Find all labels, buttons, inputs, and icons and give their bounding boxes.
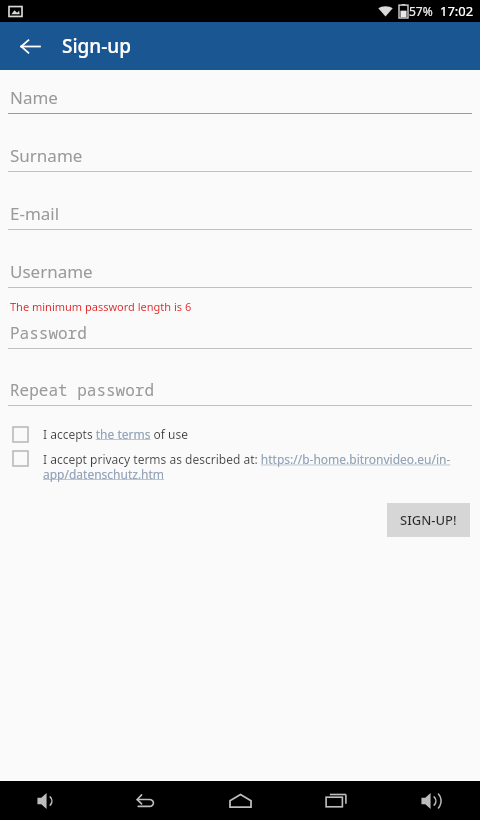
button[interactable]: SIGN-UP!: [387, 503, 470, 537]
staticText: Surname: [10, 144, 83, 167]
button[interactable]: Surname: [0, 144, 480, 172]
button[interactable]: Recents: [288, 781, 384, 820]
button[interactable]: Repeat password: [0, 379, 480, 406]
staticText: Username: [10, 260, 93, 283]
button[interactable]: Username: [0, 260, 480, 288]
button[interactable]: I accepts the terms of use: [0, 423, 480, 445]
button[interactable]: Back: [12, 28, 48, 64]
staticText: I accept privacy terms as described at: …: [43, 451, 466, 482]
staticText: Password: [10, 322, 87, 344]
button[interactable]: I accept privacy terms as described at: …: [0, 448, 480, 485]
staticText: Repeat password: [10, 379, 155, 401]
button[interactable]: Home: [192, 781, 288, 820]
button[interactable]: Back: [96, 781, 192, 820]
staticText: 57%: [409, 3, 433, 19]
staticText: The minimum password length is 6: [10, 299, 192, 314]
button[interactable]: Volume down: [0, 781, 96, 820]
button[interactable]: Volume up: [384, 781, 480, 820]
button[interactable]: E-mail: [0, 202, 480, 230]
staticText: I accepts the terms of use: [43, 426, 189, 442]
button[interactable]: Name: [0, 86, 480, 114]
staticText: Sign-up: [62, 33, 132, 59]
button[interactable]: Password: [0, 322, 480, 349]
staticText: 17:02: [440, 2, 474, 20]
staticText: SIGN-UP!: [400, 511, 457, 529]
staticText: Name: [10, 86, 58, 109]
staticText: E-mail: [10, 202, 60, 225]
